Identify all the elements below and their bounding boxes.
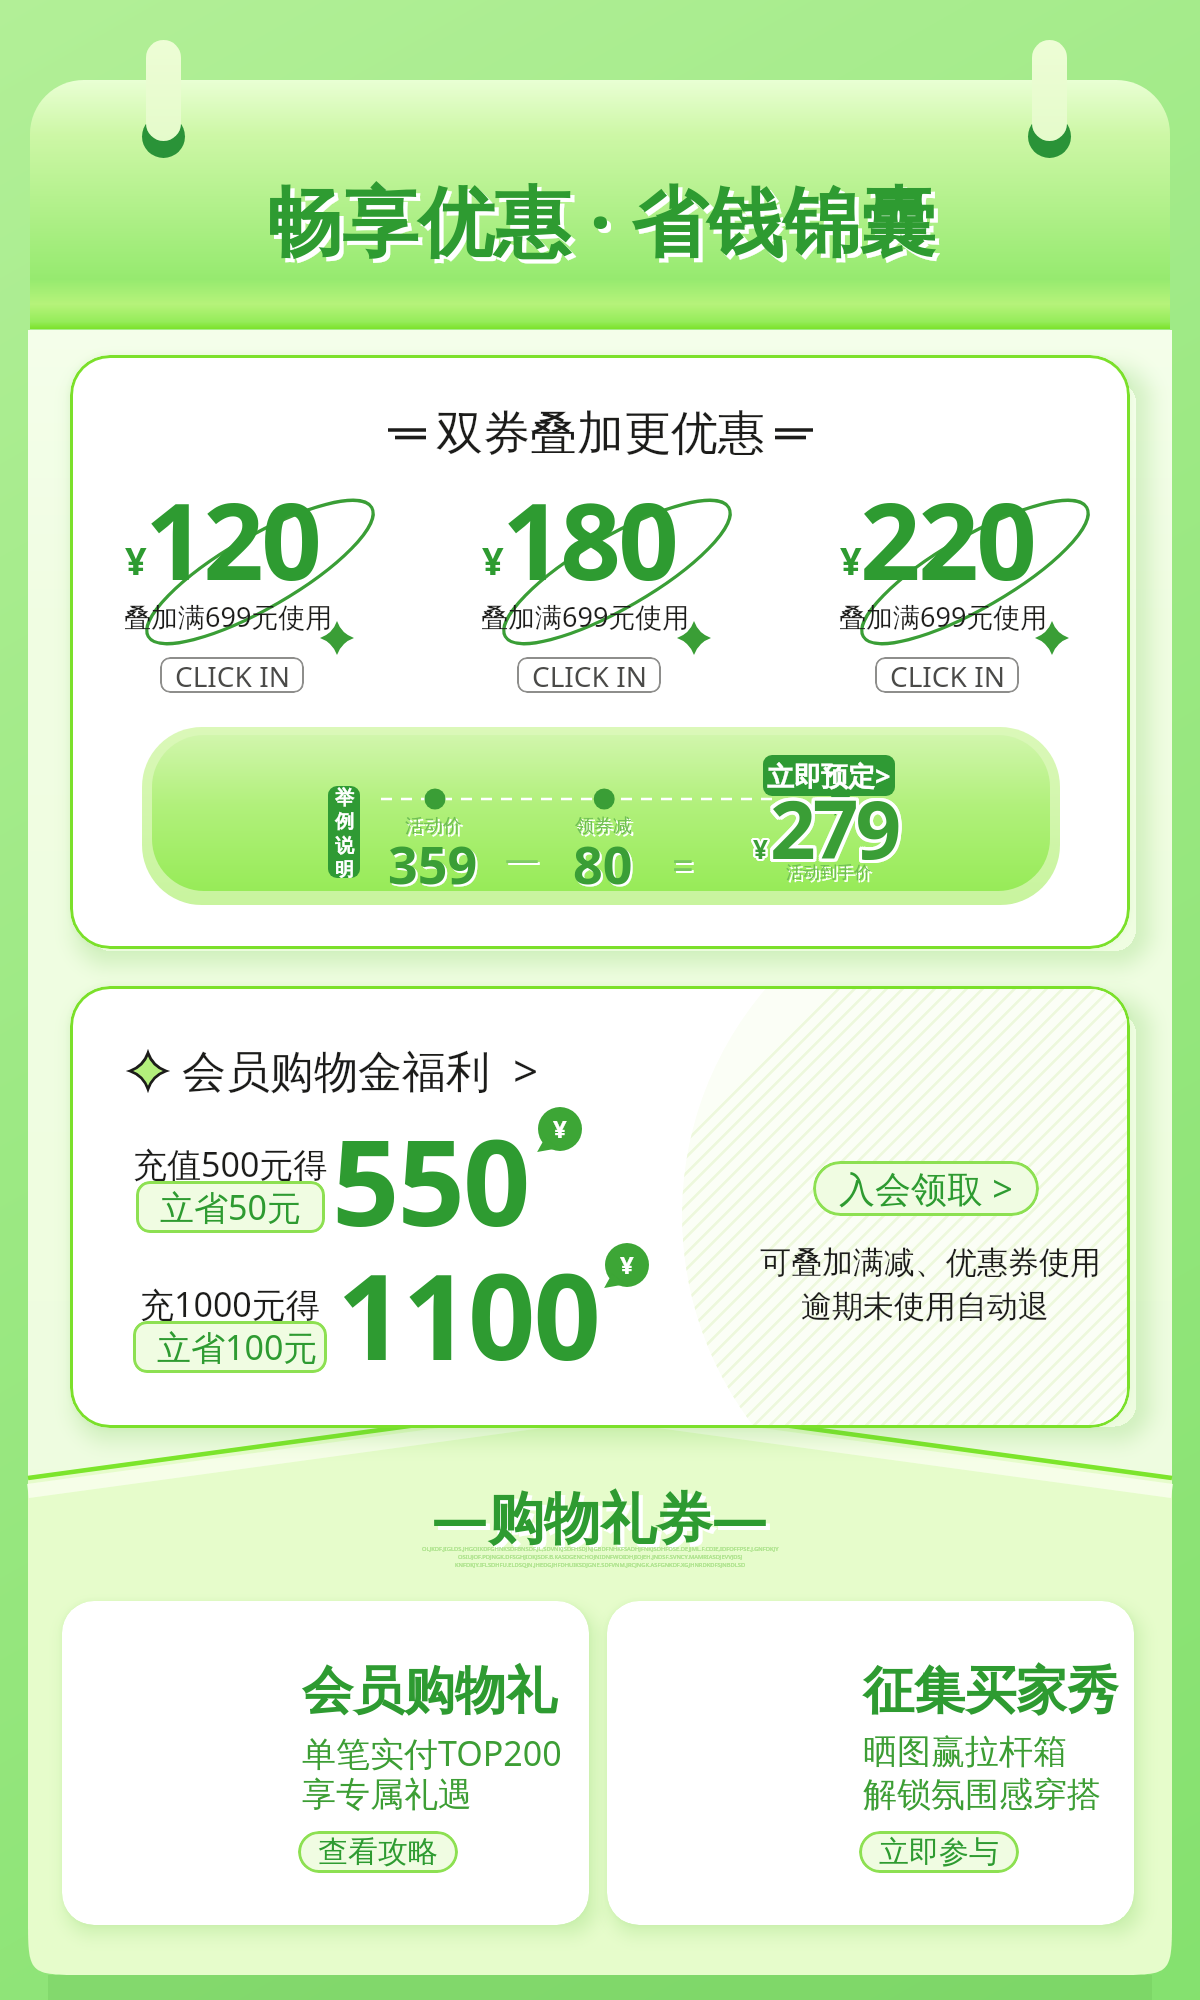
staticText: 双券叠加更优惠 [436, 404, 765, 463]
staticText: ¥ [753, 831, 768, 866]
button[interactable]: 查看攻略 [298, 1831, 458, 1873]
staticText: ¥ [754, 829, 769, 864]
button[interactable] [62, 1601, 589, 1925]
staticText: CLICK IN [890, 657, 1005, 693]
button[interactable] [607, 1601, 1134, 1925]
staticText: 充值500元得 [133, 1141, 327, 1187]
staticText: 立省50元 [160, 1184, 301, 1230]
staticText: 征集买家秀 [867, 1663, 1122, 1727]
staticText: 279 [770, 776, 899, 885]
staticText: ¥ [620, 1248, 634, 1281]
staticText: 活动价 [405, 814, 462, 838]
staticText: ¥ [755, 832, 770, 867]
staticText: — [505, 835, 539, 881]
staticText: 充1000元得 [140, 1281, 320, 1327]
staticText: 说 [335, 834, 354, 858]
staticText: 会员购物礼 [306, 1663, 561, 1727]
staticText: 550 [332, 1100, 529, 1261]
staticText: 279 [773, 773, 902, 882]
staticText: 例 [335, 810, 354, 834]
staticText: 279 [773, 771, 902, 880]
staticText: 180 [502, 467, 677, 611]
staticText: 359 [390, 830, 480, 901]
staticText: 畅享优惠 · 省钱锦囊 [270, 172, 939, 276]
staticText: 120 [145, 467, 320, 611]
staticText: — [507, 837, 541, 883]
staticText: 举 [335, 786, 354, 810]
staticText: ¥ [840, 534, 862, 586]
staticText: 征集买家秀 [863, 1659, 1118, 1723]
staticText: 279 [772, 770, 901, 879]
button[interactable]: CLICK IN [160, 657, 304, 693]
staticText: CLICK IN [532, 657, 647, 693]
staticText: 可叠加满减、优惠券使用 [760, 1243, 1090, 1282]
staticText: 晒图赢拉杆箱 [863, 1730, 1067, 1773]
staticText: 活动价 [407, 816, 464, 840]
staticText: 1100 [337, 1234, 599, 1395]
staticText: —购物礼券— [436, 1482, 772, 1558]
button[interactable]: 会员购物金福利 > [130, 1042, 539, 1100]
staticText: 享专属礼遇 [302, 1773, 472, 1816]
staticText: 会员购物金福利 > [182, 1040, 539, 1098]
staticText: ¥ [755, 830, 770, 865]
staticText: 80 [573, 828, 633, 899]
staticText: 359 [388, 828, 478, 899]
staticText: 220 [860, 467, 1035, 611]
staticText: 畅享优惠 · 省钱锦囊 [266, 168, 935, 272]
staticText: ¥ [751, 832, 766, 867]
staticText: ¥ [753, 829, 768, 864]
staticText: 279 [770, 773, 899, 882]
staticText: 领券减 [575, 814, 632, 838]
staticText: 会员购物礼 [302, 1659, 557, 1723]
staticText: = [674, 840, 696, 892]
staticText: ¥ [755, 831, 770, 866]
staticText: —购物礼券— [432, 1478, 768, 1554]
staticText: 单笔实付TOP200 [302, 1730, 562, 1776]
staticText: OSIUJOF.PDJNGK.DFSGHJIOKJSDF.B.KASDGENCH… [458, 1553, 743, 1561]
staticText: 279 [772, 776, 901, 885]
staticText: ¥ [553, 1112, 567, 1145]
staticText: 叠加满699元使用 [124, 598, 333, 635]
staticText: 明 [335, 858, 354, 878]
staticText: ¥ [125, 534, 147, 586]
button[interactable]: CLICK IN [517, 657, 661, 693]
staticText: 查看攻略 [318, 1833, 438, 1871]
staticText: 活动到手价 [786, 862, 871, 883]
staticText: 立省100元 [157, 1324, 303, 1370]
staticText: ¥ [753, 833, 768, 868]
staticText: OLJKDF.JIGLDS.JHGOIKDFGHNKSDFBNSDF.JL,SD… [422, 1545, 779, 1553]
staticText: 叠加满699元使用 [839, 598, 1048, 635]
staticText: ¥ [752, 833, 767, 868]
staticText: 逾期未使用自动退 [801, 1287, 1049, 1326]
button[interactable]: 立即预定> [763, 755, 895, 796]
staticText: 80 [575, 830, 635, 901]
button[interactable]: 立即参与 [859, 1831, 1019, 1873]
staticText: ¥ [751, 830, 766, 865]
staticText: ¥ [751, 831, 766, 866]
staticText: 解锁氛围感穿搭 [863, 1773, 1101, 1816]
button[interactable]: 入会领取 > [813, 1161, 1039, 1216]
staticText: ¥ [482, 534, 504, 586]
staticText: 立即参与 [879, 1833, 999, 1871]
staticText: 279 [767, 771, 896, 880]
staticText: KNFDKJY.IFLSDHFU.ELDSQJN.JHEDGJHFDHUIKSD… [455, 1561, 746, 1569]
staticText: ¥ [754, 833, 769, 868]
staticText: 活动到手价 [788, 864, 873, 885]
button[interactable]: CLICK IN [875, 657, 1019, 693]
staticText: 279 [768, 776, 897, 885]
staticText: 领券减 [577, 816, 634, 840]
staticText: 279 [770, 770, 899, 879]
staticText: 入会领取 > [839, 1164, 1013, 1213]
staticText: 叠加满699元使用 [481, 598, 690, 635]
staticText: CLICK IN [175, 657, 290, 693]
staticText: 279 [767, 773, 896, 882]
staticText: = [672, 838, 694, 890]
staticText: 立即预定> [767, 757, 891, 794]
staticText: ¥ [752, 829, 767, 864]
staticText: 279 [768, 770, 897, 879]
staticText: 279 [773, 775, 902, 884]
staticText: 279 [767, 775, 896, 884]
